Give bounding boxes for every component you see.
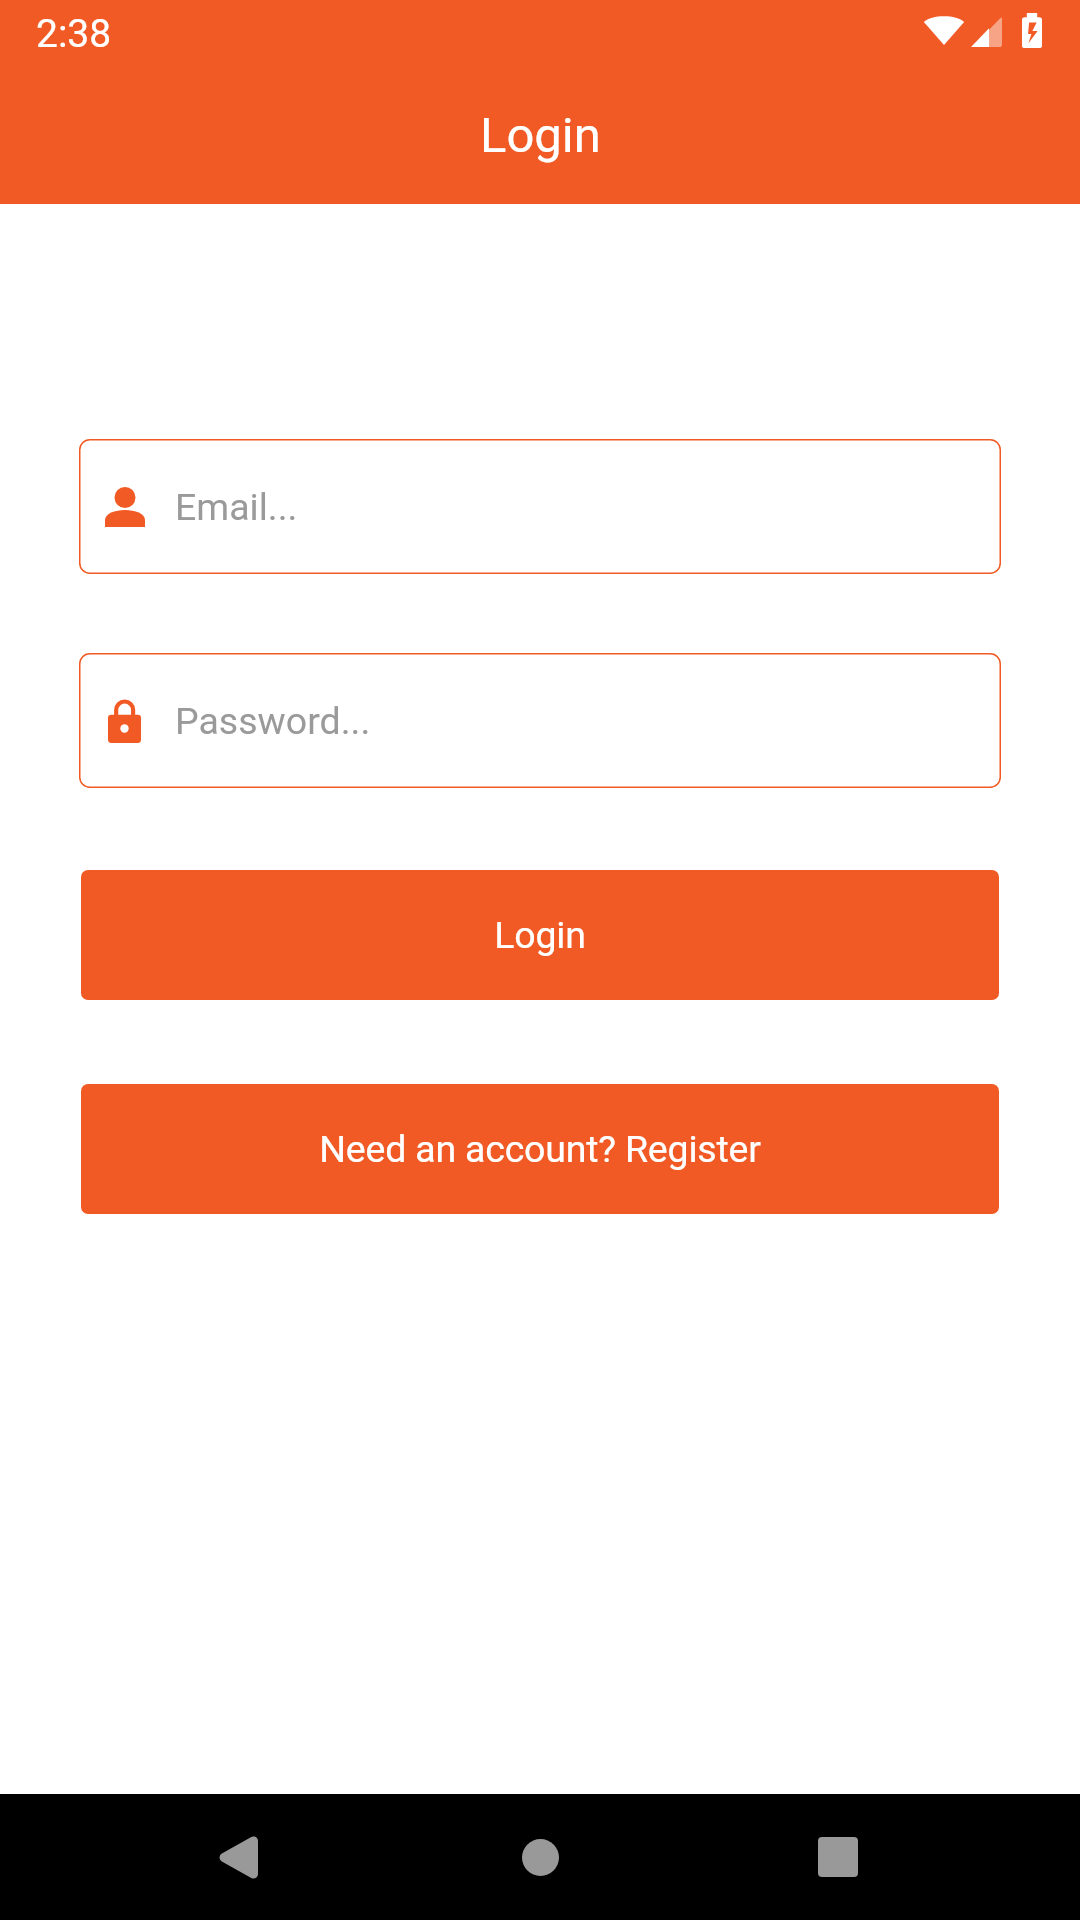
staticText: Password... (175, 699, 371, 743)
button[interactable]: Recent apps (778, 1797, 898, 1917)
staticText: Login (494, 913, 586, 957)
staticText: Need an account? Register (319, 1127, 761, 1171)
staticText: Email... (175, 485, 298, 529)
button[interactable]: Back (179, 1797, 299, 1917)
button[interactable]: Password... (79, 653, 1001, 788)
staticText: Login (480, 107, 601, 164)
button[interactable]: Need an account? Register (81, 1084, 999, 1214)
button[interactable]: Home (480, 1797, 600, 1917)
button[interactable]: Login (81, 870, 999, 1000)
staticText: 2:38 (36, 11, 112, 57)
button[interactable]: Email... (79, 439, 1001, 574)
